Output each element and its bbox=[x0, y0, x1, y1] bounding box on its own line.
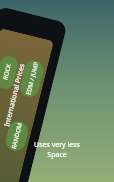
staticText: Space bbox=[47, 150, 67, 160]
staticText: Uses very less bbox=[34, 140, 80, 150]
staticText: RANDOM bbox=[10, 122, 24, 150]
button[interactable]: ROCK bbox=[0, 54, 20, 91]
button[interactable]: RANDOM bbox=[4, 119, 30, 153]
staticText: ROCK bbox=[1, 63, 13, 81]
button[interactable]: EDM / JUMP bbox=[18, 58, 45, 99]
staticText: EDM / JUMP bbox=[24, 61, 40, 96]
staticText: International Prices bbox=[2, 62, 27, 128]
